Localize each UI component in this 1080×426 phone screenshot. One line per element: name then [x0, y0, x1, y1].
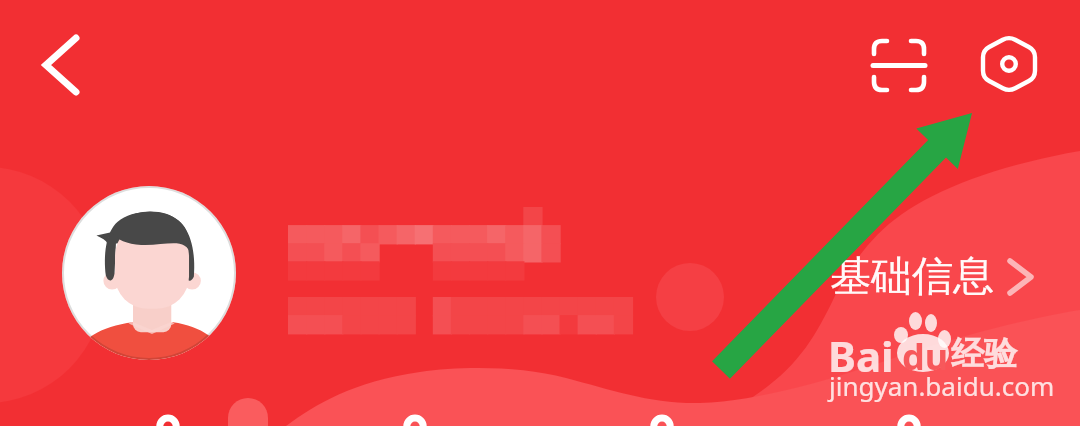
button[interactable]: Back	[15, 19, 107, 111]
staticText: Bai	[828, 327, 894, 384]
button[interactable]: 基础信息	[830, 251, 1046, 303]
staticText: 经验	[951, 333, 1017, 375]
button[interactable]: Messages	[600, 380, 724, 426]
staticText: jingyan.baidu.com	[829, 368, 1055, 403]
button[interactable]: Settings	[969, 23, 1049, 103]
staticText: du	[902, 332, 949, 381]
staticText: 基础信息	[830, 251, 994, 303]
button[interactable]: Home	[106, 380, 230, 426]
button[interactable]: Me	[847, 380, 971, 426]
button[interactable]: Scan	[860, 25, 940, 105]
button[interactable]: Discover	[353, 380, 477, 426]
button[interactable]: Profile picture	[62, 186, 236, 360]
